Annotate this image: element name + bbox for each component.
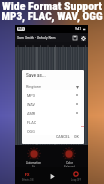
staticText: 9:41 [75,27,82,31]
button[interactable]: Save [71,34,79,42]
staticText: Ringtone [26,84,41,88]
staticText: Sam Smith - Unholy Rem [17,35,56,40]
staticText: Balanced [64,165,75,167]
staticText: HiFi [18,27,24,31]
staticText: Automation [26,161,42,165]
staticText: WAV [27,102,36,106]
button[interactable]: FX [15,167,40,184]
button[interactable]: MP3 [24,90,81,99]
button[interactable]: Color [52,145,86,167]
button[interactable]: OK [72,134,81,140]
staticText: MP3 [27,93,35,97]
staticText: CANCEL [56,135,70,139]
staticText: FLAC [27,120,37,124]
staticText: Save as... [26,73,46,78]
button[interactable]: OGG [24,126,81,135]
button[interactable]: WAV [24,99,81,108]
staticText: Loop OFF [71,178,82,181]
button[interactable]: Automation [17,145,51,167]
button[interactable]: Play [40,167,64,184]
staticText: Color [66,161,73,165]
button[interactable]: AMR [24,108,81,117]
button[interactable]: FLAC [24,117,81,126]
staticText: OGG [27,129,35,133]
staticText: Fit [32,165,36,167]
staticText: OK [74,135,79,139]
button[interactable]: CANCEL [54,134,72,140]
button[interactable]: Loop OFF [64,167,88,184]
staticText: Effects ON [22,178,34,181]
staticText: FX [25,172,30,177]
staticText: MP3, FLAC, WAV, OGG [1,10,103,23]
staticText: Wide Format Support [2,0,102,13]
staticText: AMR [27,111,36,115]
button[interactable]: Settings [79,34,87,42]
